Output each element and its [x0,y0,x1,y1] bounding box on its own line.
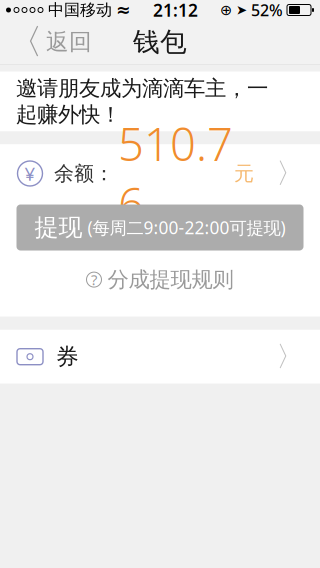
button[interactable]: 提现 [16,204,303,250]
staticText: 〉 [276,339,304,374]
staticText: 钱包 [133,26,187,58]
staticText: ¥ [24,161,35,186]
staticText: 提现 [34,213,82,242]
staticText: 510.76 [118,113,233,234]
staticText: 券 [56,343,79,371]
staticText: ➤ [236,2,247,17]
staticText: 〉 [276,156,304,191]
staticText: 分成提现规则 [107,266,233,293]
staticText: 余额： [54,161,114,186]
staticText: 21:12 [153,0,198,21]
staticText: 邀请朋友成为滴滴车主，一起赚外快！ [16,75,268,128]
button[interactable]: 〈 [0,15,92,69]
staticText: 中国移动 [48,0,112,20]
button[interactable]: 券 [0,330,320,384]
staticText: (每周二9:00-22:00可提现) [82,216,285,239]
staticText: 〈 [8,21,43,63]
button[interactable]: ¥ [0,144,320,202]
staticText: ? [91,270,97,289]
staticText: ≈ [116,0,131,20]
button[interactable]: ? [86,256,233,303]
staticText: 元 [234,161,254,186]
staticText: ⊕ [220,2,232,18]
staticText: 返回 [46,28,92,56]
button[interactable]: 邀请朋友成为滴滴车主，一起赚外快！ [0,71,320,131]
staticText: 52% [251,0,283,21]
